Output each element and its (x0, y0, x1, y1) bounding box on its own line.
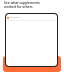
staticText: See what supplements worked for others (4, 1, 52, 9)
button[interactable] (3, 56, 61, 72)
